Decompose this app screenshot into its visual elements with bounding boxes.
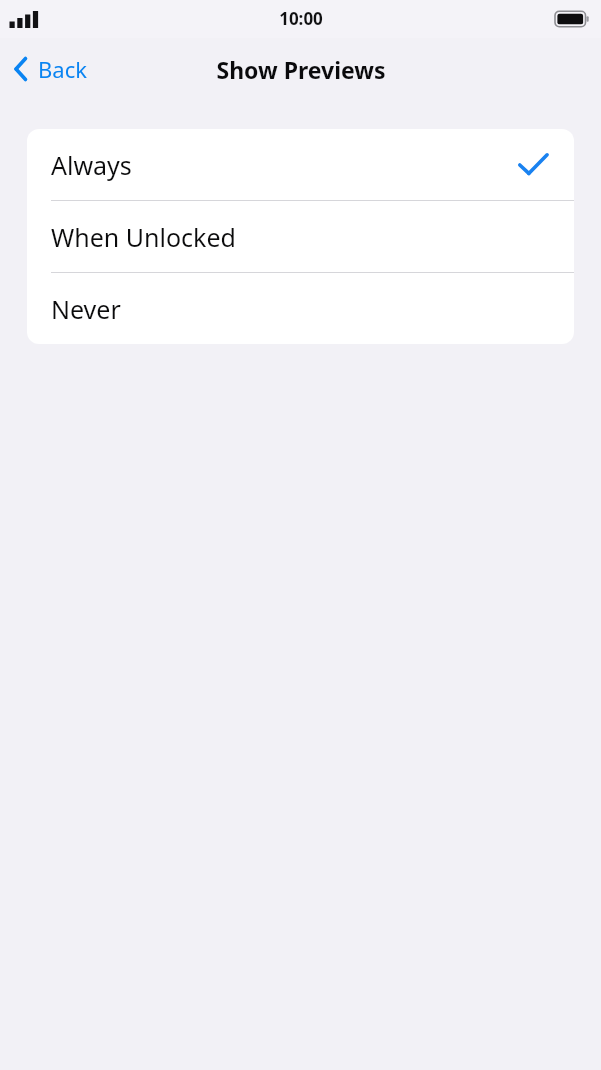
button[interactable]: Always <box>27 129 574 200</box>
staticText: Never <box>51 292 121 326</box>
button[interactable]: Back <box>10 50 97 88</box>
button[interactable]: Never <box>27 273 574 344</box>
staticText: Show Previews <box>216 54 386 85</box>
staticText: 10:00 <box>279 7 323 30</box>
staticText: Always <box>51 148 132 182</box>
staticText: Back <box>38 54 87 84</box>
staticText: When Unlocked <box>51 220 236 254</box>
button[interactable]: When Unlocked <box>27 201 574 272</box>
